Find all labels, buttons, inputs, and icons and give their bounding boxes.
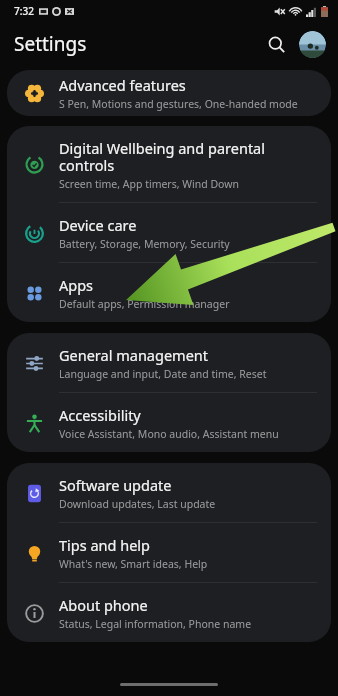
- staticText: General management: [59, 345, 209, 365]
- button[interactable]: Search: [261, 29, 291, 59]
- button[interactable]: Tips and help: [7, 523, 331, 582]
- staticText: 7:32: [14, 4, 34, 18]
- staticText: Language and input, Date and time, Reset: [59, 367, 267, 381]
- staticText: Battery, Storage, Memory, Security: [59, 237, 230, 251]
- staticText: Default apps, Permission manager: [59, 297, 230, 311]
- button[interactable]: About phone: [7, 583, 331, 642]
- staticText: What's new, Smart ideas, Help: [59, 557, 208, 571]
- button[interactable]: Advanced features: [7, 70, 331, 116]
- staticText: Digital Wellbeing and parental controls: [59, 138, 319, 175]
- button[interactable]: Apps: [7, 263, 331, 322]
- staticText: Download updates, Last update: [59, 497, 216, 511]
- button[interactable]: Software update: [7, 463, 331, 522]
- button[interactable]: Accessibility: [7, 393, 331, 452]
- button[interactable]: Account: [299, 31, 326, 58]
- staticText: Voice Assistant, Mono audio, Assistant m…: [59, 427, 279, 441]
- staticText: S Pen, Motions and gestures, One-handed …: [59, 97, 298, 111]
- staticText: Status, Legal information, Phone name: [59, 617, 252, 631]
- staticText: Advanced features: [59, 75, 186, 95]
- button[interactable]: General management: [7, 333, 331, 392]
- staticText: Accessibility: [59, 405, 141, 425]
- staticText: Settings: [14, 31, 87, 57]
- staticText: About phone: [59, 595, 148, 615]
- button[interactable]: Device care: [7, 203, 331, 262]
- staticText: Device care: [59, 215, 137, 235]
- staticText: Apps: [59, 275, 94, 295]
- staticText: Software update: [59, 475, 172, 495]
- staticText: Tips and help: [59, 535, 151, 555]
- staticText: Screen time, App timers, Wind Down: [59, 177, 239, 191]
- button[interactable]: Digital Wellbeing and parental controls: [7, 126, 331, 202]
